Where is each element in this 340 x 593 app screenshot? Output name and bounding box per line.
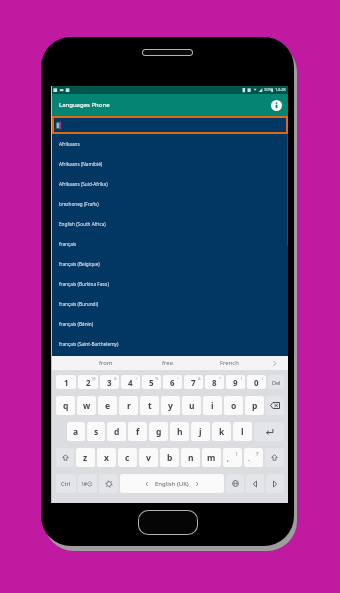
button[interactable]: l bbox=[233, 422, 252, 441]
button[interactable]: k bbox=[212, 422, 231, 441]
button[interactable]: f bbox=[128, 422, 147, 441]
button[interactable]: français bbox=[52, 234, 288, 254]
button[interactable] bbox=[254, 422, 284, 441]
staticText: ~ bbox=[71, 376, 74, 381]
staticText: français bbox=[59, 241, 77, 247]
staticText: * bbox=[219, 376, 222, 381]
button[interactable]: , bbox=[223, 448, 242, 467]
button[interactable]: Del bbox=[268, 375, 284, 389]
staticText: 7 bbox=[191, 377, 196, 388]
staticText: Del bbox=[272, 379, 281, 386]
button[interactable]: h bbox=[170, 422, 189, 441]
button[interactable] bbox=[246, 474, 264, 493]
staticText: Afrikaans (Namibië) bbox=[59, 161, 103, 167]
staticText: Ctrl bbox=[61, 480, 71, 487]
staticText: français (Burundi) bbox=[59, 301, 99, 307]
staticText: 30% bbox=[264, 87, 273, 93]
button[interactable]: Info bbox=[268, 97, 284, 113]
staticText: français (Saint-Barthelemy) bbox=[59, 341, 119, 347]
button[interactable]: x bbox=[97, 448, 116, 467]
button[interactable]: b bbox=[160, 448, 179, 467]
button[interactable]: c bbox=[118, 448, 137, 467]
button[interactable] bbox=[52, 116, 288, 134]
staticText: @ bbox=[92, 376, 96, 381]
staticText: k bbox=[219, 426, 225, 438]
staticText: e bbox=[105, 400, 111, 412]
button[interactable]: Afrikaans (Suid-Afrika) bbox=[52, 174, 288, 194]
button[interactable]: French bbox=[198, 356, 260, 370]
button[interactable]: e bbox=[98, 396, 117, 415]
button[interactable]: 4 bbox=[121, 375, 140, 389]
button[interactable]: v bbox=[139, 448, 158, 467]
button[interactable] bbox=[56, 448, 74, 467]
staticText: ? bbox=[256, 450, 259, 457]
button[interactable]: j bbox=[191, 422, 210, 441]
button[interactable]: p bbox=[245, 396, 264, 415]
button[interactable] bbox=[265, 448, 284, 467]
button[interactable]: More suggestions bbox=[260, 356, 288, 370]
staticText: s bbox=[94, 426, 99, 438]
button[interactable]: 5 bbox=[142, 375, 161, 389]
button[interactable]: r bbox=[119, 396, 138, 415]
staticText: p bbox=[252, 400, 258, 412]
button[interactable]: 2 bbox=[78, 375, 98, 389]
button[interactable]: q bbox=[56, 396, 75, 415]
button[interactable]: français (Saint-Barthelemy) bbox=[52, 334, 288, 354]
button[interactable] bbox=[226, 474, 244, 493]
button[interactable]: o bbox=[224, 396, 243, 415]
button[interactable]: a bbox=[67, 422, 85, 441]
button[interactable]: free bbox=[136, 356, 198, 370]
button[interactable]: w bbox=[77, 396, 96, 415]
button[interactable]: Afrikaans bbox=[52, 134, 288, 154]
button[interactable]: français (Belgique) bbox=[52, 254, 288, 274]
button[interactable]: 6 bbox=[163, 375, 182, 389]
button[interactable]: 1 bbox=[56, 375, 76, 389]
button[interactable]: g bbox=[149, 422, 168, 441]
staticText: l bbox=[241, 426, 244, 438]
button[interactable]: 0 bbox=[247, 375, 266, 389]
button[interactable]: s bbox=[87, 422, 105, 441]
staticText: % bbox=[155, 376, 159, 381]
staticText: 0 bbox=[254, 377, 259, 388]
button[interactable]: d bbox=[107, 422, 126, 441]
staticText: & bbox=[198, 376, 201, 381]
staticText: q bbox=[63, 400, 69, 412]
button[interactable]: 7 bbox=[184, 375, 203, 389]
staticText: . bbox=[248, 454, 250, 464]
staticText: brezhoneg (Frañs) bbox=[59, 201, 99, 207]
button[interactable]: . bbox=[244, 448, 263, 467]
staticText: Afrikaans bbox=[59, 141, 80, 147]
button[interactable]: English (UK) bbox=[120, 474, 224, 493]
button[interactable]: English (South Africa) bbox=[52, 214, 288, 234]
button[interactable]: brezhoneg (Frañs) bbox=[52, 194, 288, 214]
button[interactable]: t bbox=[140, 396, 159, 415]
button[interactable]: n bbox=[181, 448, 200, 467]
button[interactable]: Afrikaans (Namibië) bbox=[52, 154, 288, 174]
staticText: 1 bbox=[64, 377, 69, 388]
button[interactable] bbox=[266, 396, 284, 415]
staticText: x bbox=[104, 452, 109, 464]
staticText: a bbox=[73, 426, 79, 438]
staticText: i bbox=[211, 400, 214, 412]
button[interactable]: u bbox=[182, 396, 201, 415]
button[interactable]: français (Bénin) bbox=[52, 314, 288, 334]
button[interactable]: i bbox=[203, 396, 222, 415]
button[interactable]: 8 bbox=[205, 375, 224, 389]
button[interactable]: !#☺ bbox=[78, 474, 97, 493]
button[interactable]: z bbox=[76, 448, 95, 467]
button[interactable]: y bbox=[161, 396, 180, 415]
staticText: f bbox=[136, 426, 140, 438]
button[interactable] bbox=[266, 474, 284, 493]
button[interactable]: 9 bbox=[226, 375, 245, 389]
button[interactable]: Home bbox=[138, 510, 198, 535]
button[interactable]: français (Burkina Faso) bbox=[52, 274, 288, 294]
staticText: w bbox=[83, 400, 91, 412]
button[interactable]: français (Burundi) bbox=[52, 294, 288, 314]
staticText: from bbox=[99, 359, 113, 367]
button[interactable]: Ctrl bbox=[56, 474, 76, 493]
button[interactable]: from bbox=[75, 356, 136, 370]
button[interactable]: 3 bbox=[100, 375, 119, 389]
button[interactable] bbox=[99, 474, 118, 493]
staticText: d bbox=[114, 426, 120, 438]
button[interactable]: m bbox=[202, 448, 221, 467]
